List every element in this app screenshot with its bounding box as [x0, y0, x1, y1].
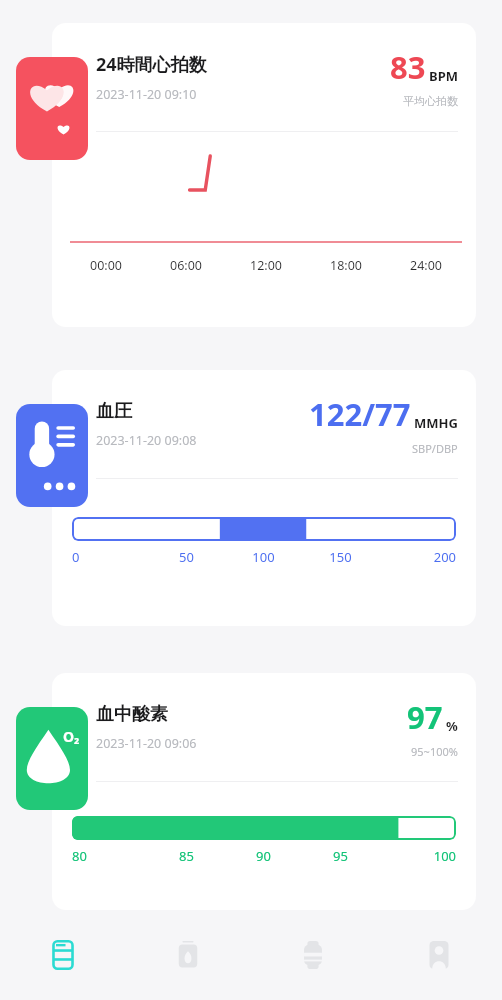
- button[interactable]: Profile: [376, 928, 502, 1000]
- staticText: 50: [148, 548, 225, 566]
- button[interactable]: Health records: [0, 928, 125, 1000]
- staticText: 血中酸素: [96, 703, 168, 726]
- staticText: 100: [379, 847, 456, 865]
- button[interactable]: [72, 816, 456, 840]
- staticText: 血圧: [96, 400, 132, 423]
- button[interactable]: Heart rate: [16, 57, 88, 160]
- staticText: %: [446, 717, 458, 735]
- button[interactable]: Activity: [125, 928, 250, 1000]
- staticText: 2023-11-20 09:08: [96, 432, 197, 449]
- staticText: 2023-11-20 09:06: [96, 735, 197, 752]
- button[interactable]: 血圧: [52, 370, 476, 626]
- staticText: SBP/DBP: [412, 441, 458, 456]
- button[interactable]: Blood oxygen: [16, 707, 88, 810]
- staticText: 95~100%: [411, 744, 458, 759]
- staticText: 06:00: [146, 257, 226, 274]
- staticText: 12:00: [226, 257, 306, 274]
- staticText: 00:00: [66, 257, 146, 274]
- staticText: 24:00: [386, 257, 466, 274]
- staticText: BPM: [429, 67, 458, 85]
- staticText: 122/77: [309, 393, 411, 435]
- button[interactable]: Blood pressure: [16, 404, 88, 507]
- staticText: 0: [72, 548, 148, 566]
- button[interactable]: 24時間心拍数: [52, 23, 476, 327]
- staticText: 200: [379, 548, 456, 566]
- staticText: 90: [225, 847, 302, 865]
- staticText: 83: [390, 46, 426, 88]
- staticText: O₂: [63, 727, 80, 746]
- button[interactable]: [72, 517, 456, 541]
- staticText: 80: [72, 847, 148, 865]
- staticText: 平均心拍数: [403, 94, 458, 108]
- staticText: 18:00: [306, 257, 386, 274]
- staticText: 97: [407, 696, 443, 738]
- button[interactable]: Device: [250, 928, 376, 1000]
- staticText: 150: [302, 548, 379, 566]
- staticText: 2023-11-20 09:10: [96, 86, 197, 103]
- staticText: MMHG: [414, 414, 458, 432]
- button[interactable]: 血中酸素: [52, 673, 476, 910]
- staticText: 24時間心拍数: [96, 52, 207, 77]
- staticText: 85: [148, 847, 225, 865]
- staticText: 95: [302, 847, 379, 865]
- staticText: 100: [225, 548, 302, 566]
